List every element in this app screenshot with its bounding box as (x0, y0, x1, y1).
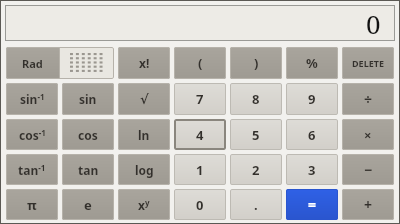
button[interactable]: ) (230, 47, 282, 79)
staticText: ( (198, 54, 203, 72)
button[interactable]: 4 (174, 119, 226, 150)
staticText: sin (79, 91, 97, 107)
staticText: tan (78, 162, 99, 178)
button[interactable]: + (342, 189, 394, 220)
button[interactable]: Keypad layout (60, 47, 114, 79)
button[interactable]: ÷ (342, 83, 394, 115)
button[interactable]: sin (62, 83, 114, 115)
button[interactable]: tan (62, 154, 114, 185)
staticText: e (84, 196, 92, 214)
button[interactable]: 7 (174, 83, 226, 115)
staticText: 0 (196, 196, 204, 214)
staticText: + (364, 195, 373, 214)
staticText: log (135, 162, 154, 178)
staticText: 8 (252, 90, 260, 108)
staticText: 0 (366, 6, 381, 41)
button[interactable]: − (342, 154, 394, 185)
button[interactable]: 0 (174, 189, 226, 220)
button[interactable]: ( (174, 47, 226, 79)
staticText: 1 (196, 161, 204, 179)
staticText: xy (138, 197, 150, 213)
button[interactable]: sin-1 (6, 83, 58, 115)
button[interactable]: 8 (230, 83, 282, 115)
button[interactable]: 6 (286, 119, 338, 150)
button[interactable]: % (286, 47, 338, 79)
staticText: Rad (22, 56, 43, 71)
staticText: cos (78, 127, 98, 143)
button[interactable]: 9 (286, 83, 338, 115)
staticText: × (364, 126, 372, 144)
staticText: ln (138, 127, 150, 143)
staticText: ÷ (364, 90, 373, 109)
button[interactable]: tan-1 (6, 154, 58, 185)
button[interactable]: log (118, 154, 170, 185)
staticText: − (364, 160, 373, 179)
button[interactable]: 1 (174, 154, 226, 185)
staticText: ) (254, 54, 259, 72)
button[interactable]: xy (118, 189, 170, 220)
button[interactable]: . (230, 189, 282, 220)
button[interactable]: cos (62, 119, 114, 150)
button[interactable]: cos-1 (6, 119, 58, 150)
staticText: √ (140, 92, 149, 107)
staticText: 9 (308, 90, 316, 108)
button[interactable]: ln (118, 119, 170, 150)
staticText: % (306, 54, 318, 72)
staticText: 2 (252, 161, 260, 179)
staticText: DELETE (352, 57, 384, 69)
button[interactable]: Rad (6, 47, 59, 79)
staticText: x! (139, 55, 150, 71)
staticText: 5 (252, 126, 260, 144)
button[interactable]: × (342, 119, 394, 150)
staticText: tan-1 (18, 162, 46, 178)
staticText: 6 (308, 126, 316, 144)
button[interactable]: 5 (230, 119, 282, 150)
staticText: = (308, 195, 317, 214)
button[interactable]: π (6, 189, 58, 220)
staticText: cos-1 (19, 127, 46, 143)
staticText: . (254, 196, 258, 214)
button[interactable]: = (286, 189, 338, 220)
staticText: π (27, 196, 37, 214)
staticText: 4 (196, 126, 204, 144)
staticText: sin-1 (20, 91, 45, 107)
button[interactable]: e (62, 189, 114, 220)
staticText: 7 (196, 90, 204, 108)
button[interactable]: DELETE (342, 47, 394, 79)
staticText: 3 (308, 161, 316, 179)
button[interactable]: √ (118, 83, 170, 115)
button[interactable]: 3 (286, 154, 338, 185)
button[interactable]: x! (118, 47, 170, 79)
button[interactable]: 2 (230, 154, 282, 185)
